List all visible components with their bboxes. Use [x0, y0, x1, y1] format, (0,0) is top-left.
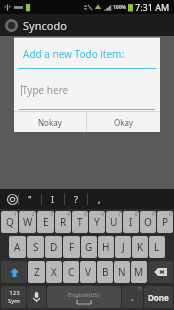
staticText: K	[137, 240, 144, 254]
button[interactable]: Y	[89, 211, 105, 233]
staticText: ,	[98, 193, 101, 205]
staticText: U	[110, 215, 118, 229]
button[interactable]: Done	[144, 286, 173, 308]
button[interactable]: R	[55, 211, 71, 233]
button[interactable]: Okay	[87, 112, 160, 132]
button[interactable]: L	[149, 236, 165, 258]
staticText: P	[162, 215, 169, 229]
staticText: W	[23, 215, 33, 229]
button[interactable]: Backspace	[148, 261, 173, 283]
staticText: 100%	[113, 4, 127, 11]
button[interactable]: E	[37, 211, 54, 233]
staticText: V	[85, 265, 91, 279]
button[interactable]: U	[106, 211, 122, 233]
staticText: O	[144, 215, 152, 229]
button[interactable]: Voice input	[27, 286, 46, 308]
button[interactable]: V	[80, 261, 96, 283]
button[interactable]: A	[9, 236, 26, 258]
button[interactable]: "	[19, 189, 41, 209]
staticText: Done	[148, 292, 169, 303]
button[interactable]: I	[123, 211, 139, 233]
staticText: L	[154, 240, 160, 254]
button[interactable]: S	[27, 236, 44, 258]
button[interactable]: Voice options	[7, 194, 18, 205]
staticText: 6	[101, 211, 104, 218]
button[interactable]: K	[132, 236, 148, 258]
staticText: S	[33, 240, 39, 254]
staticText: English(US)	[68, 291, 100, 299]
button[interactable]: I	[42, 189, 64, 209]
staticText: Sym	[8, 297, 20, 305]
button[interactable]: ?	[65, 189, 87, 209]
button[interactable]: F	[63, 236, 80, 258]
staticText: M	[134, 265, 144, 279]
staticText: J	[122, 240, 125, 254]
staticText: H	[102, 240, 110, 254]
staticText: X	[51, 265, 57, 279]
staticText: B	[102, 265, 109, 279]
staticText: Type here	[22, 83, 69, 97]
staticText: Q	[6, 215, 14, 229]
button[interactable]: O	[140, 211, 156, 233]
staticText: ?	[74, 193, 78, 205]
staticText: Y	[94, 215, 100, 229]
button[interactable]: .	[122, 286, 143, 308]
staticText: G	[85, 240, 93, 254]
button[interactable]: Space	[47, 286, 121, 308]
staticText: 7:31 AM	[135, 1, 170, 13]
staticText: .	[131, 290, 134, 304]
button[interactable]: 123	[1, 286, 26, 308]
staticText: 0	[169, 211, 172, 218]
staticText: F	[69, 240, 75, 254]
button[interactable]: H	[98, 236, 114, 258]
button[interactable]: ,	[88, 189, 110, 209]
button[interactable]: P	[157, 211, 173, 233]
staticText: D	[50, 240, 58, 254]
staticText: !?	[138, 286, 142, 293]
button[interactable]: C	[63, 261, 79, 283]
staticText: Okay	[114, 117, 134, 128]
staticText: 1	[14, 211, 17, 218]
staticText: 9	[152, 211, 155, 218]
button[interactable]: Z	[28, 261, 45, 283]
staticText: R	[60, 215, 67, 229]
button[interactable]: J	[115, 236, 131, 258]
staticText: 2	[32, 211, 35, 218]
staticText: N	[118, 265, 126, 279]
staticText: Add a new Todo item:	[23, 47, 125, 61]
staticText: T	[77, 215, 83, 229]
button[interactable]: Q	[1, 211, 18, 233]
staticText: Syncodo	[23, 18, 67, 33]
button[interactable]: M	[131, 261, 147, 283]
button[interactable]: Shift	[1, 261, 27, 283]
button[interactable]: T	[72, 211, 88, 233]
button[interactable]: N	[114, 261, 130, 283]
staticText: 4	[67, 211, 70, 218]
staticText: I	[51, 193, 55, 205]
staticText: 7	[118, 211, 121, 218]
button[interactable]: G	[81, 236, 97, 258]
staticText: 5	[84, 211, 87, 218]
staticText: E	[43, 215, 49, 229]
button[interactable]: Nokay	[14, 112, 86, 132]
button[interactable]: D	[45, 236, 62, 258]
staticText: I	[129, 215, 133, 229]
button[interactable]: X	[46, 261, 62, 283]
staticText: "	[28, 193, 32, 205]
staticText: 3	[50, 211, 53, 218]
staticText: Z	[34, 265, 40, 279]
staticText: 123	[9, 289, 20, 297]
staticText: A	[14, 240, 21, 254]
button[interactable]: W	[19, 211, 36, 233]
staticText: 8	[135, 211, 138, 218]
staticText: C	[68, 265, 75, 279]
staticText: Nokay	[38, 117, 62, 128]
button[interactable]: B	[97, 261, 113, 283]
